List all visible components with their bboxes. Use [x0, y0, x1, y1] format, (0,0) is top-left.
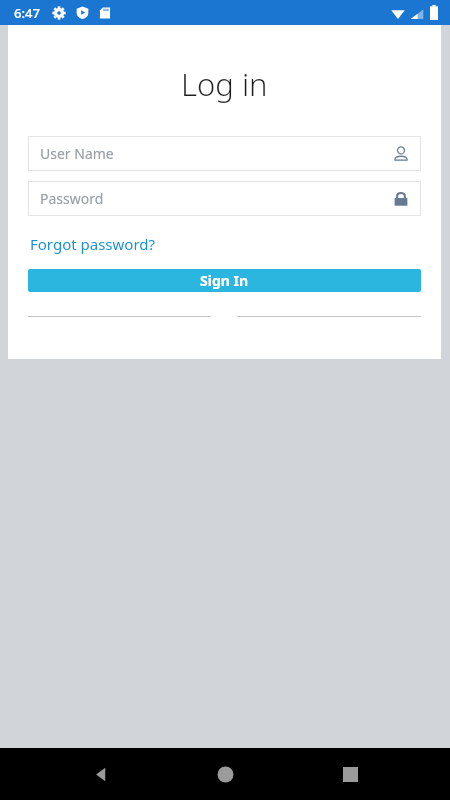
button[interactable]: User Name — [28, 136, 421, 171]
staticText: User Name — [40, 144, 114, 163]
button[interactable]: Recent apps — [326, 750, 374, 798]
staticText: Sign In — [200, 271, 249, 290]
other: User name — [391, 144, 411, 164]
button[interactable]: Password — [28, 181, 421, 216]
staticText: Password — [40, 189, 104, 208]
staticText: 6:47 — [14, 4, 40, 22]
button[interactable]: Back — [77, 750, 125, 798]
button[interactable]: Sign In — [28, 269, 421, 292]
button[interactable]: Forgot password? — [28, 232, 158, 256]
other: Password — [391, 189, 411, 209]
staticText: Log in — [181, 63, 268, 105]
staticText: Forgot password? — [30, 234, 156, 254]
button[interactable]: Home — [201, 750, 249, 798]
